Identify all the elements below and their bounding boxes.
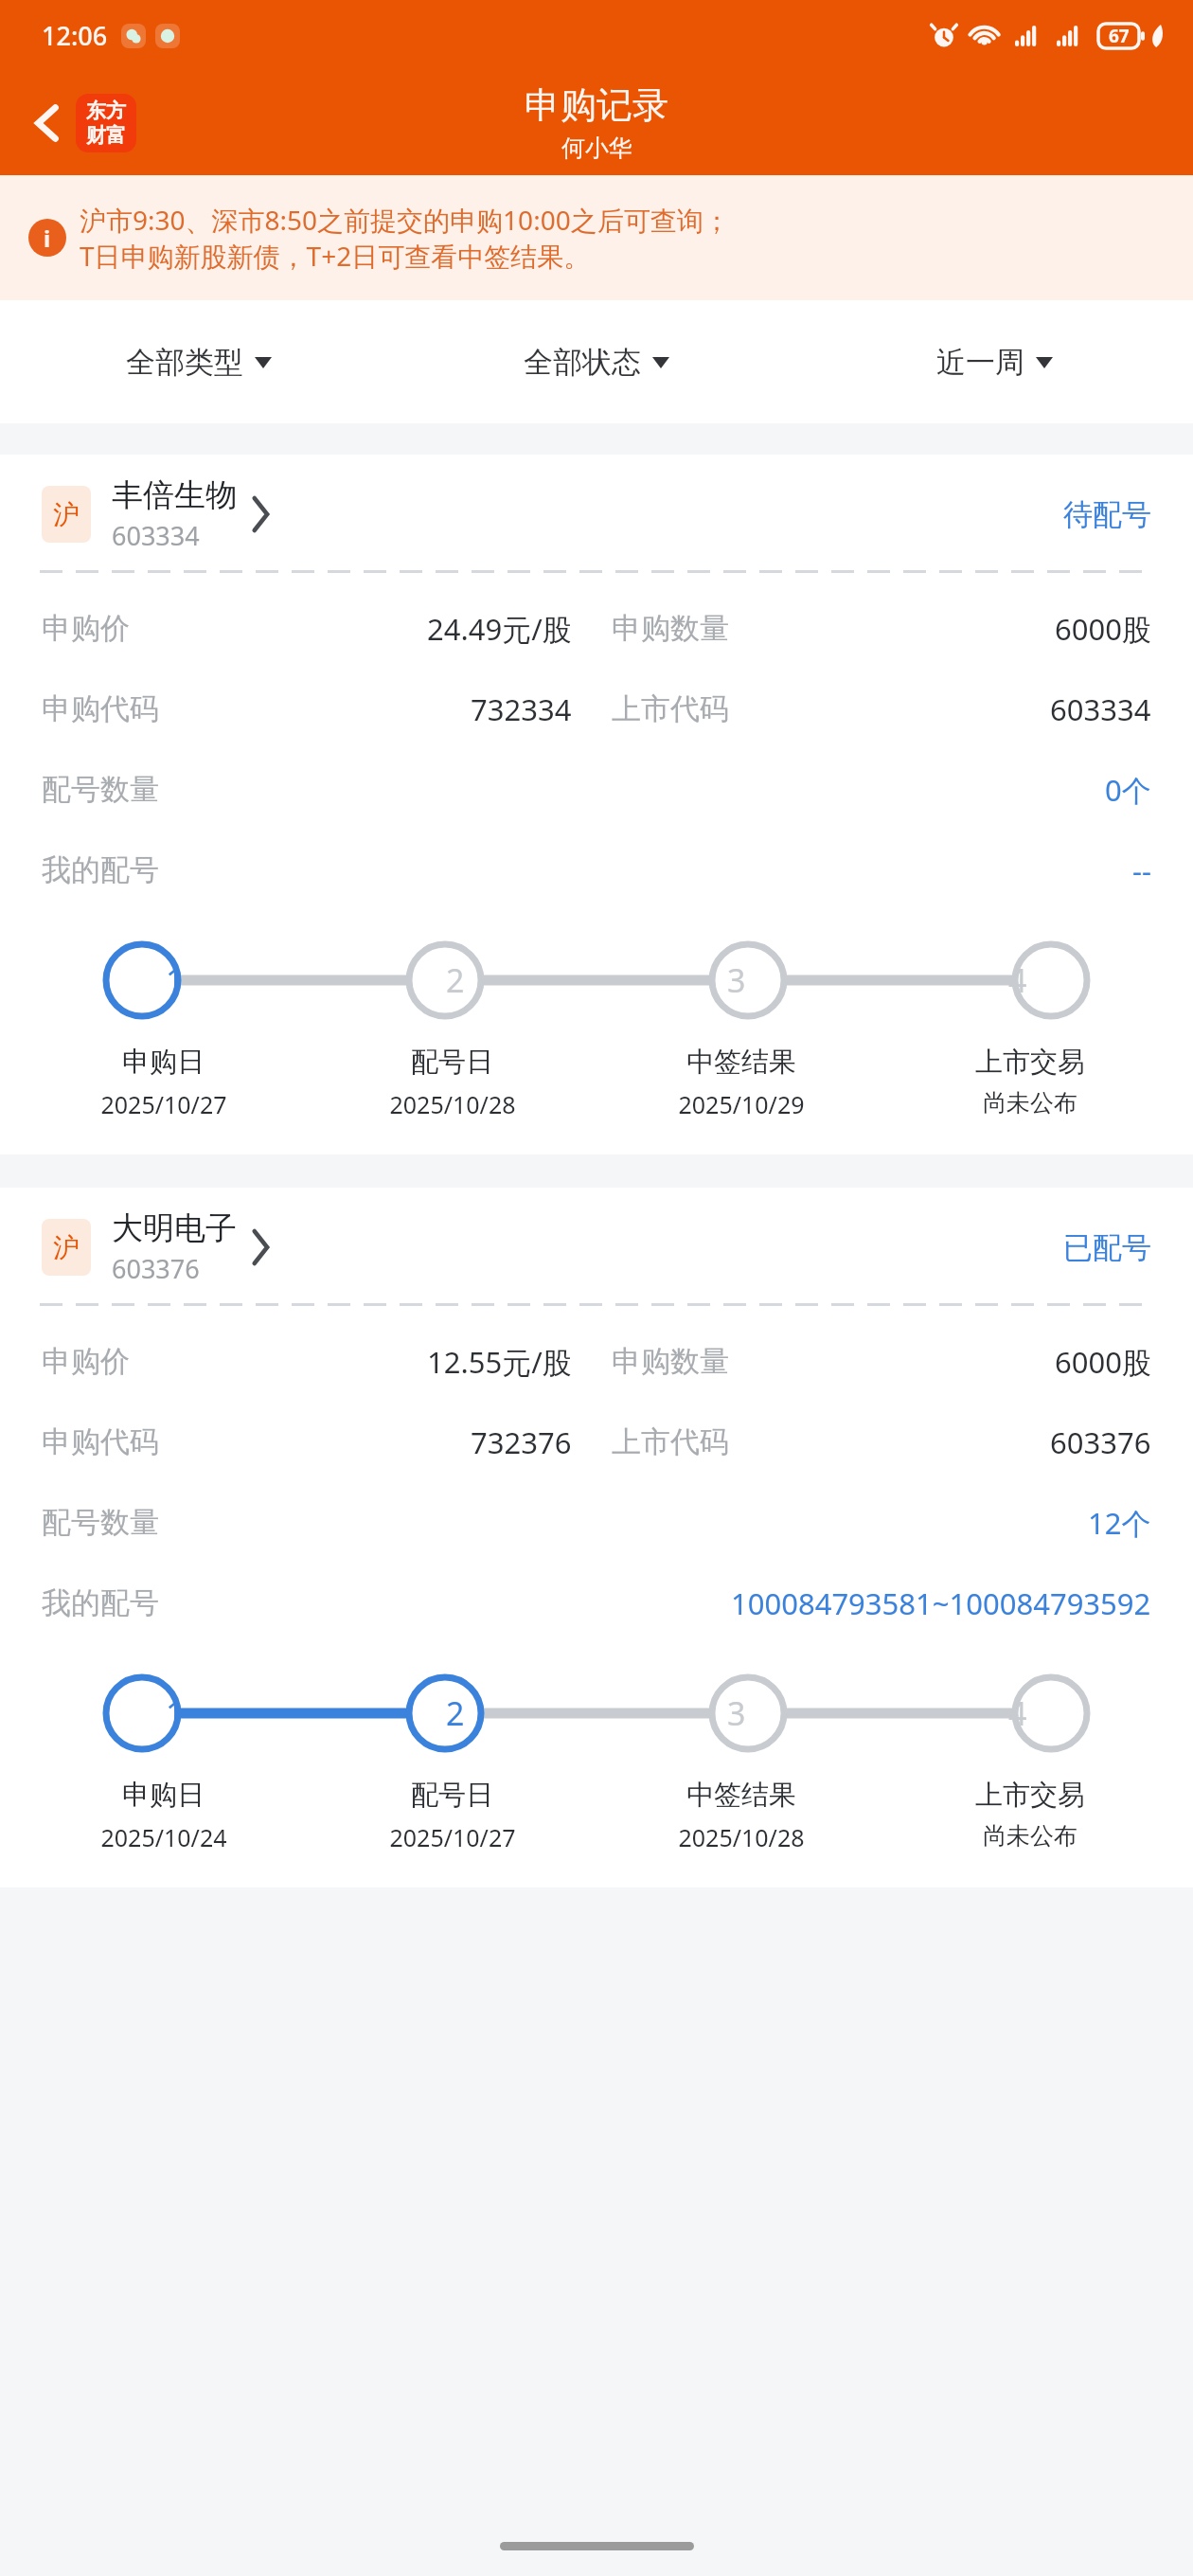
staticText: 2025/10/28 (389, 1088, 516, 1120)
staticText: 中签结果 (686, 1045, 796, 1080)
staticText: 全部状态 (524, 344, 641, 381)
staticText: 12:06 (42, 18, 108, 53)
staticText: T日申购新股新债，T+2日可查看中签结果。 (80, 238, 591, 274)
staticText: 603334 (112, 518, 200, 553)
staticText: 上市交易 (975, 1778, 1085, 1813)
staticText: 2025/10/24 (100, 1821, 227, 1853)
staticText: 申购日 (122, 1045, 205, 1080)
button[interactable]: 返回 (23, 84, 148, 162)
staticText: 配号日 (411, 1778, 493, 1813)
staticText: 2025/10/27 (100, 1088, 227, 1120)
staticText: 603334 (1050, 689, 1151, 729)
staticText: 2025/10/29 (678, 1088, 805, 1120)
staticText: 申购价 (42, 1343, 130, 1380)
button[interactable]: 近一周 (795, 300, 1193, 423)
staticText: 1 (166, 1691, 185, 1735)
staticText: 3 (727, 1691, 746, 1735)
staticText: 603376 (112, 1251, 200, 1286)
staticText: 0个 (1105, 770, 1151, 810)
staticText: 申购记录 (525, 82, 668, 128)
staticText: 我的配号 (42, 1584, 159, 1621)
staticText: 申购数量 (612, 610, 729, 647)
staticText: 配号日 (411, 1045, 493, 1080)
staticText: 已配号 (1063, 1229, 1151, 1266)
staticText: 2025/10/27 (389, 1821, 516, 1853)
staticText: 财富 (86, 123, 126, 148)
button[interactable]: 沪 (0, 1188, 1193, 1303)
staticText: 4 (1008, 1691, 1027, 1735)
staticText: 申购数量 (612, 1343, 729, 1380)
staticText: 上市代码 (612, 1423, 729, 1460)
staticText: 2 (446, 958, 465, 1002)
staticText: 3 (727, 958, 746, 1002)
staticText: 67 (1109, 24, 1130, 48)
staticText: 我的配号 (42, 851, 159, 888)
staticText: 2 (446, 1691, 465, 1735)
staticText: 申购代码 (42, 1423, 159, 1460)
staticText: 申购日 (122, 1778, 205, 1813)
staticText: 沪 (53, 1231, 80, 1264)
staticText: 上市代码 (612, 690, 729, 727)
staticText: 中签结果 (686, 1778, 796, 1813)
staticText: -- (1132, 850, 1151, 890)
staticText: 沪 (53, 498, 80, 531)
staticText: 12个 (1088, 1503, 1151, 1543)
staticText: 6000股 (1055, 609, 1151, 649)
staticText: 申购价 (42, 610, 130, 647)
button[interactable]: 全部类型 (0, 300, 398, 423)
staticText: 配号数量 (42, 771, 159, 808)
staticText: 24.49元/股 (427, 609, 572, 649)
staticText: 6000股 (1055, 1342, 1151, 1382)
staticText: i (44, 223, 51, 254)
staticText: 上市交易 (975, 1045, 1085, 1080)
button[interactable]: 全部状态 (398, 300, 795, 423)
staticText: 尚未公布 (983, 1088, 1077, 1118)
staticText: 配号数量 (42, 1504, 159, 1541)
staticText: 东方 (86, 98, 126, 123)
staticText: 待配号 (1063, 496, 1151, 533)
staticText: 近一周 (936, 344, 1024, 381)
staticText: 何小华 (561, 134, 632, 163)
staticText: 全部类型 (126, 344, 243, 381)
staticText: 4 (1008, 958, 1027, 1002)
staticText: 12.55元/股 (427, 1342, 572, 1382)
staticText: 尚未公布 (983, 1821, 1077, 1851)
staticText: 732334 (471, 689, 572, 729)
staticText: 丰倍生物 (112, 475, 237, 515)
button[interactable]: 沪 (0, 455, 1193, 570)
staticText: 申购代码 (42, 690, 159, 727)
staticText: 2025/10/28 (678, 1821, 805, 1853)
staticText: 603376 (1050, 1422, 1151, 1462)
staticText: 大明电子 (112, 1208, 237, 1248)
staticText: 沪市9:30、深市8:50之前提交的申购10:00之后可查询； (80, 202, 730, 238)
staticText: 1 (166, 958, 185, 1002)
staticText: 100084793581~100084793592 (731, 1583, 1151, 1623)
staticText: 732376 (471, 1422, 572, 1462)
